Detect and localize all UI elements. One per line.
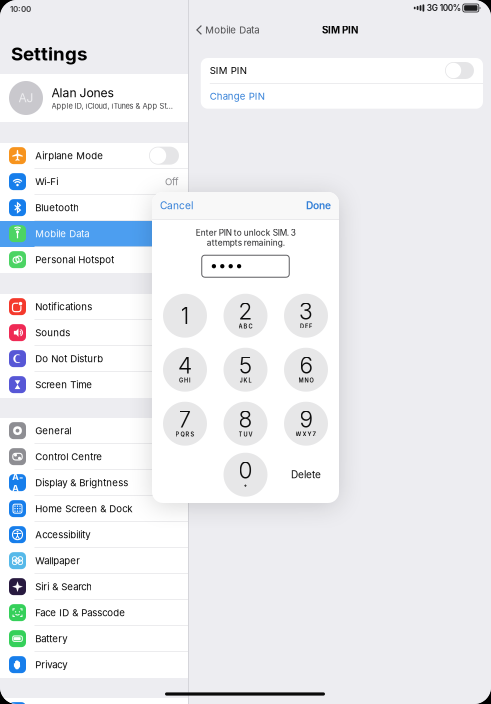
button[interactable]: Do Not Disturb — [0, 346, 188, 372]
staticText: AJ — [18, 91, 33, 105]
button[interactable]: Screen Time — [0, 372, 188, 398]
staticText: Mobile Data — [205, 24, 259, 36]
button[interactable]: Home Screen & Dock — [0, 496, 188, 522]
staticText: 3 — [299, 298, 313, 325]
staticText: 5 — [239, 352, 252, 379]
button[interactable]: Face ID & Passcode — [0, 600, 188, 626]
staticText: M N O — [298, 377, 313, 384]
staticText: Face ID & Passcode — [35, 607, 125, 618]
staticText: J K L — [239, 377, 251, 384]
staticText: Alan Jones — [51, 85, 113, 100]
button[interactable]: Notifications — [0, 294, 188, 320]
button[interactable]: 0 — [223, 453, 267, 497]
staticText: Apple ID, iCloud, iTunes & App St… — [51, 102, 172, 111]
staticText: + — [243, 482, 247, 489]
button[interactable]: 4 — [163, 348, 207, 392]
staticText: Personal Hotspot — [35, 254, 114, 265]
staticText: 8 — [238, 406, 252, 433]
button[interactable]: Sounds — [0, 320, 188, 346]
button[interactable]: Mobile Data — [189, 18, 266, 42]
staticText: Off — [165, 176, 179, 187]
button[interactable]: 8 — [223, 402, 267, 446]
staticText: T U V — [238, 431, 252, 438]
staticText: Notifications — [35, 301, 92, 312]
staticText: 0 — [238, 457, 252, 484]
staticText: Accessibility — [35, 529, 90, 540]
button[interactable]: Personal Hotspot — [0, 247, 188, 273]
button[interactable]: 5 — [223, 348, 267, 392]
button[interactable]: Battery — [0, 626, 188, 652]
button[interactable]: General — [0, 418, 188, 444]
staticText: General — [35, 425, 71, 436]
staticText: Privacy — [35, 659, 67, 670]
staticText: Home Screen & Dock — [35, 503, 132, 514]
staticText: Wi-Fi — [35, 176, 58, 187]
staticText: Done — [306, 199, 331, 212]
button[interactable]: Delete — [284, 453, 328, 497]
staticText: Enter PIN to unlock SIM. 3 attempts rema… — [195, 228, 295, 248]
button[interactable]: A — [0, 698, 188, 704]
button[interactable]: Mobile Data — [0, 221, 188, 247]
staticText: Airplane Mode — [35, 150, 103, 161]
button[interactable]: 1 — [163, 294, 207, 338]
button[interactable]: 2 — [223, 294, 267, 338]
button[interactable]: Control Centre — [0, 444, 188, 470]
staticText: Bluetooth — [35, 202, 79, 213]
button[interactable]: Wallpaper — [0, 548, 188, 574]
staticText: P Q R S — [175, 431, 194, 438]
button[interactable]: Wi-Fi — [0, 169, 188, 195]
button[interactable]: 7 — [163, 402, 207, 446]
staticText: Display & Brightness — [35, 477, 128, 488]
staticText: SIM PIN — [322, 24, 358, 36]
staticText: Screen Time — [35, 379, 92, 390]
staticText: SIM PIN — [210, 65, 247, 76]
staticText: Siri & Search — [35, 581, 92, 592]
staticText: Battery — [35, 633, 67, 644]
button[interactable]: Siri & Search — [0, 574, 188, 600]
staticText: 6 — [299, 352, 312, 379]
button[interactable]: AA — [0, 470, 188, 496]
staticText: 2 — [238, 298, 252, 325]
button[interactable]: 3 — [284, 294, 328, 338]
button[interactable]: Privacy — [0, 652, 188, 678]
staticText: 1 — [180, 302, 189, 329]
staticText: A B C — [238, 323, 252, 330]
button[interactable]: Done — [298, 192, 339, 219]
staticText: 3G 100% — [427, 3, 461, 13]
button[interactable]: Bluetooth — [0, 195, 188, 221]
button[interactable]: AJ — [0, 74, 188, 122]
staticText: Cancel — [160, 199, 193, 212]
staticText: Control Centre — [35, 451, 102, 462]
button[interactable]: Change PIN — [201, 84, 483, 109]
staticText: Do Not Disturb — [35, 353, 103, 364]
staticText: 7 — [178, 406, 191, 433]
button[interactable]: 9 — [284, 402, 328, 446]
staticText: D E F — [300, 323, 312, 330]
button[interactable]: Airplane Mode — [0, 143, 188, 169]
staticText: Sounds — [35, 327, 70, 338]
staticText: 9 — [299, 406, 312, 433]
staticText: Wallpaper — [35, 555, 80, 566]
button[interactable]: Cancel — [152, 192, 201, 219]
staticText: 4 — [178, 352, 192, 379]
staticText: Settings — [11, 42, 87, 65]
staticText: AA — [12, 471, 23, 494]
staticText: Delete — [291, 469, 321, 481]
staticText: G H I — [179, 377, 191, 384]
button[interactable]: Accessibility — [0, 522, 188, 548]
staticText: 10:00 — [10, 4, 31, 14]
staticText: W X Y Z — [295, 431, 316, 438]
button[interactable]: 6 — [284, 348, 328, 392]
staticText: Change PIN — [210, 90, 265, 102]
staticText: Mobile Data — [35, 228, 89, 239]
